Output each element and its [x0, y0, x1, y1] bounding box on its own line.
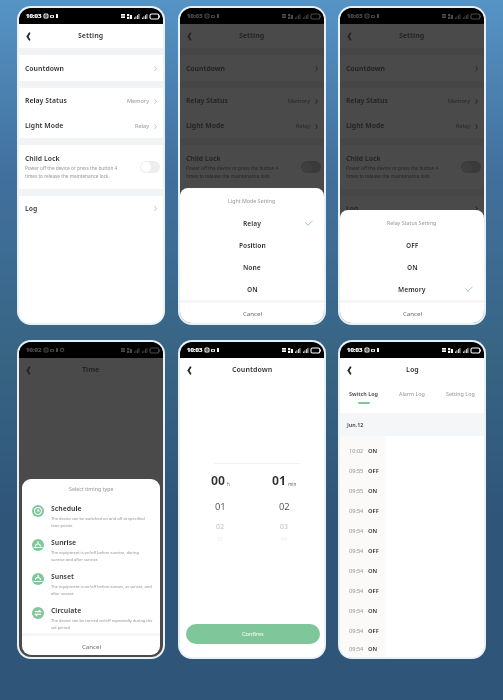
staticText: Light Mode — [25, 121, 64, 130]
button[interactable]: Sunrise — [22, 531, 160, 565]
staticText: Child Lock — [346, 154, 381, 163]
button[interactable]: Log — [19, 196, 163, 221]
button[interactable]: Confirm — [186, 624, 320, 644]
staticText: OFF — [368, 627, 379, 635]
staticText: Sunrise — [51, 538, 77, 547]
button[interactable]: Position — [180, 234, 324, 256]
staticText: OFF — [406, 241, 419, 250]
staticText: None — [243, 263, 261, 272]
staticText: ON — [407, 263, 418, 272]
staticText: Jun.12 — [347, 421, 364, 428]
button[interactable]: Log — [340, 196, 484, 221]
staticText: Child Lock — [186, 154, 221, 163]
staticText: ON — [247, 285, 258, 294]
staticText: 09:54 — [349, 507, 364, 515]
button[interactable]: Circulate — [22, 599, 160, 633]
button[interactable]: Back — [181, 363, 195, 377]
staticText: 02 — [216, 522, 224, 531]
staticText: Setting Log — [446, 390, 475, 397]
staticText: 09:54 — [349, 607, 364, 615]
button[interactable]: Log — [180, 196, 324, 221]
button[interactable]: Memory — [340, 278, 484, 300]
button[interactable]: Child Lock — [180, 145, 324, 189]
staticText: Power off the device or press the button… — [346, 165, 439, 179]
button[interactable]: None — [180, 256, 324, 278]
staticText: 01 — [215, 500, 226, 513]
staticText: Countdown — [346, 64, 386, 73]
button[interactable]: Back — [181, 29, 195, 43]
staticText: Cancel — [82, 642, 101, 650]
staticText: 10:03 — [347, 346, 363, 354]
staticText: Light Mode — [346, 121, 385, 130]
button[interactable]: Back — [20, 363, 34, 377]
button[interactable]: Light Mode — [340, 113, 484, 138]
staticText: Relay — [135, 122, 150, 130]
staticText: ON — [368, 645, 378, 653]
button[interactable]: Back — [20, 29, 34, 43]
staticText: 09:54 — [349, 527, 364, 535]
button[interactable]: Child Lock — [340, 145, 484, 189]
staticText: ON — [368, 527, 378, 535]
button[interactable]: OFF — [340, 234, 484, 256]
staticText: 02 — [279, 500, 290, 513]
button[interactable]: ON — [340, 256, 484, 278]
staticText: Relay — [456, 122, 471, 130]
button[interactable]: ON — [180, 278, 324, 300]
button[interactable]: Relay Status — [180, 88, 324, 113]
button[interactable]: Relay Status — [340, 88, 484, 113]
staticText: Switch Log — [349, 390, 379, 397]
staticText: Countdown — [25, 64, 65, 73]
button[interactable]: Relay Status — [19, 88, 163, 113]
staticText: 03 — [280, 522, 288, 531]
staticText: ON — [368, 567, 378, 575]
button[interactable]: Countdown — [19, 55, 163, 81]
staticText: h — [227, 481, 230, 487]
staticText: ON — [368, 447, 378, 455]
staticText: 01 — [272, 472, 286, 489]
staticText: 09:54 — [349, 567, 364, 575]
staticText: 10:03 — [26, 12, 42, 20]
button[interactable]: Cancel — [340, 303, 484, 323]
button[interactable]: Light Mode — [19, 113, 163, 138]
staticText: Position — [239, 241, 266, 250]
staticText: Relay — [296, 122, 311, 130]
staticText: 10:03 — [187, 12, 203, 20]
button[interactable]: Child lock toggle — [461, 161, 481, 173]
staticText: The equipment is on/off before sunset, a… — [51, 584, 153, 596]
staticText: Memory — [448, 97, 471, 105]
button[interactable]: Cancel — [22, 636, 160, 655]
staticText: Time — [82, 365, 100, 375]
button[interactable]: Schedule — [22, 497, 160, 531]
staticText: 03 — [217, 535, 223, 542]
staticText: Cancel — [243, 309, 262, 317]
staticText: ON — [368, 607, 378, 615]
button[interactable]: Back — [341, 29, 355, 43]
staticText: Alarm Log — [399, 390, 425, 397]
button[interactable]: Sunset — [22, 565, 160, 599]
button[interactable]: Child Lock — [19, 145, 163, 189]
staticText: Countdown — [232, 365, 273, 375]
staticText: 04 — [281, 535, 287, 542]
staticText: 00 — [211, 472, 225, 489]
button[interactable]: Back — [341, 363, 355, 377]
button[interactable]: Switch Log — [340, 382, 388, 413]
staticText: Relay Status Setting — [387, 219, 437, 226]
button[interactable]: Setting Log — [436, 382, 484, 413]
button[interactable]: Relay — [180, 212, 324, 234]
button[interactable]: Alarm Log — [388, 382, 436, 413]
staticText: Schedule — [51, 504, 82, 513]
button[interactable]: Countdown — [340, 55, 484, 81]
button[interactable]: Child lock toggle — [140, 161, 160, 173]
staticText: Log — [346, 204, 359, 213]
staticText: min — [288, 481, 297, 487]
button[interactable]: Light Mode — [180, 113, 324, 138]
staticText: Child Lock — [25, 154, 60, 163]
button[interactable]: Child lock toggle — [301, 161, 321, 173]
staticText: 10:02 — [26, 346, 42, 354]
button[interactable]: Countdown — [180, 55, 324, 81]
staticText: Setting — [399, 31, 425, 41]
staticText: Setting — [239, 31, 265, 41]
staticText: 09:54 — [349, 547, 364, 555]
button[interactable]: Cancel — [180, 303, 324, 323]
